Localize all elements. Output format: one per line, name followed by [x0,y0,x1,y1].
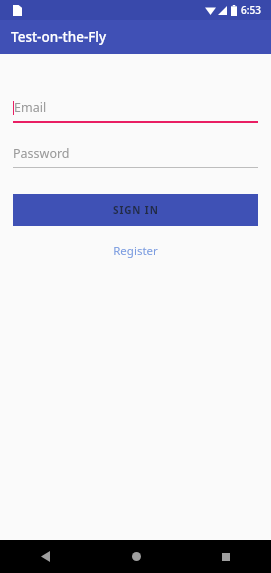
button[interactable]: Password [13,145,258,168]
staticText: Email [14,99,47,116]
button[interactable]: Home [91,540,181,573]
staticText: Register [113,243,158,259]
staticText: 6:53 [241,3,261,17]
button[interactable]: SIGN IN [13,194,258,226]
button[interactable]: Recent apps [181,540,271,573]
button[interactable]: Email [13,99,258,123]
button[interactable]: Register [101,239,170,263]
button[interactable]: Back [0,540,91,573]
staticText: SIGN IN [113,203,159,217]
staticText: Password [13,145,70,162]
staticText: Test-on-the-Fly [11,28,107,46]
